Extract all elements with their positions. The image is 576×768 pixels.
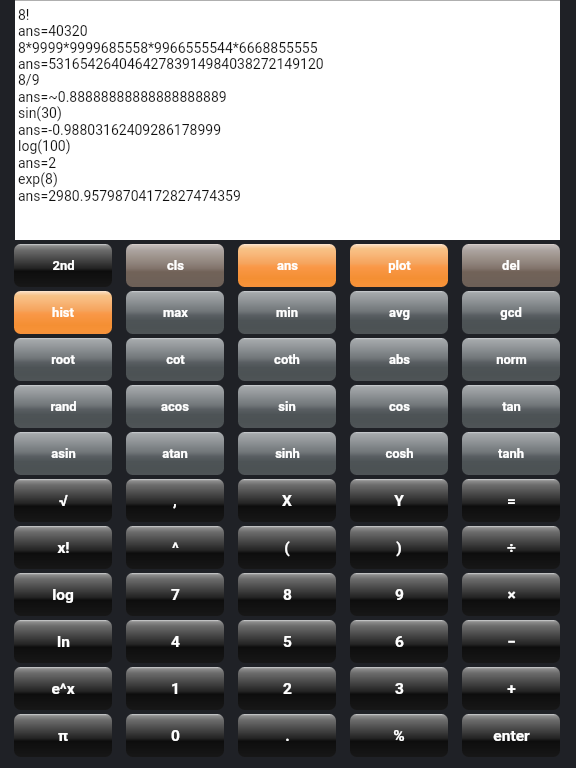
staticText: ans=53165426404642783914984038272149120 bbox=[18, 56, 324, 72]
staticText: norm bbox=[496, 352, 527, 367]
staticText: 1 bbox=[171, 680, 180, 698]
staticText: Y bbox=[394, 492, 404, 510]
button[interactable]: root bbox=[14, 338, 112, 381]
staticText: ^ bbox=[172, 539, 179, 557]
staticText: , bbox=[173, 492, 177, 510]
staticText: % bbox=[393, 727, 405, 745]
button[interactable]: abs bbox=[350, 338, 448, 381]
button[interactable]: 0 bbox=[126, 714, 224, 757]
button[interactable]: del bbox=[462, 244, 560, 287]
button[interactable]: tanh bbox=[462, 432, 560, 475]
staticText: atan bbox=[162, 446, 188, 461]
staticText: abs bbox=[389, 352, 410, 367]
button[interactable]: 1 bbox=[126, 667, 224, 710]
button[interactable]: hist bbox=[14, 291, 112, 334]
button[interactable]: norm bbox=[462, 338, 560, 381]
button[interactable]: acos bbox=[126, 385, 224, 428]
button[interactable]: cot bbox=[126, 338, 224, 381]
button[interactable]: 5 bbox=[238, 620, 336, 663]
button[interactable]: min bbox=[238, 291, 336, 334]
button[interactable]: tan bbox=[462, 385, 560, 428]
button[interactable]: = bbox=[462, 479, 560, 522]
button[interactable]: ^ bbox=[126, 526, 224, 569]
staticText: ans=~0.88888888888888888889 bbox=[18, 89, 227, 105]
staticText: log bbox=[52, 586, 74, 604]
button[interactable]: cosh bbox=[350, 432, 448, 475]
staticText: sinh bbox=[275, 446, 300, 461]
staticText: rand bbox=[50, 399, 77, 414]
staticText: X bbox=[282, 492, 292, 510]
button[interactable]: 9 bbox=[350, 573, 448, 616]
staticText: max bbox=[163, 305, 188, 320]
staticText: tanh bbox=[498, 446, 524, 461]
button[interactable]: 7 bbox=[126, 573, 224, 616]
button[interactable]: max bbox=[126, 291, 224, 334]
staticText: gcd bbox=[500, 305, 522, 320]
button[interactable]: gcd bbox=[462, 291, 560, 334]
staticText: 7 bbox=[171, 586, 180, 604]
staticText: 8 bbox=[283, 586, 292, 604]
button[interactable]: % bbox=[350, 714, 448, 757]
staticText: 8! bbox=[18, 7, 30, 23]
button[interactable]: 2nd bbox=[14, 244, 112, 287]
staticText: . bbox=[285, 727, 290, 745]
staticText: 6 bbox=[395, 633, 404, 651]
button[interactable]: plot bbox=[350, 244, 448, 287]
button[interactable]: e^x bbox=[14, 667, 112, 710]
button[interactable]: rand bbox=[14, 385, 112, 428]
button[interactable]: log bbox=[14, 573, 112, 616]
staticText: + bbox=[507, 680, 516, 698]
staticText: ans=-0.98803162409286178999 bbox=[18, 122, 222, 138]
button[interactable]: enter bbox=[462, 714, 560, 757]
button[interactable]: Y bbox=[350, 479, 448, 522]
button[interactable]: sin bbox=[238, 385, 336, 428]
staticText: ln bbox=[57, 633, 70, 651]
button[interactable]: 6 bbox=[350, 620, 448, 663]
staticText: root bbox=[51, 352, 75, 367]
staticText: √ bbox=[59, 492, 68, 510]
button[interactable]: X bbox=[238, 479, 336, 522]
button[interactable]: 4 bbox=[126, 620, 224, 663]
staticText: ans bbox=[277, 258, 298, 273]
button[interactable]: coth bbox=[238, 338, 336, 381]
staticText: coth bbox=[274, 352, 300, 367]
button[interactable]: 2 bbox=[238, 667, 336, 710]
button[interactable]: avg bbox=[350, 291, 448, 334]
button[interactable]: × bbox=[462, 573, 560, 616]
staticText: del bbox=[502, 258, 520, 273]
button[interactable]: + bbox=[462, 667, 560, 710]
button[interactable]: . bbox=[238, 714, 336, 757]
button[interactable]: ) bbox=[350, 526, 448, 569]
button[interactable]: sinh bbox=[238, 432, 336, 475]
button[interactable]: , bbox=[126, 479, 224, 522]
button[interactable]: atan bbox=[126, 432, 224, 475]
staticText: ÷ bbox=[507, 539, 516, 557]
staticText: min bbox=[276, 305, 298, 320]
button[interactable]: cls bbox=[126, 244, 224, 287]
button[interactable]: √ bbox=[14, 479, 112, 522]
staticText: 2nd bbox=[52, 258, 75, 273]
staticText: 5 bbox=[283, 633, 292, 651]
staticText: e^x bbox=[51, 680, 75, 698]
button[interactable]: − bbox=[462, 620, 560, 663]
staticText: sin bbox=[278, 399, 296, 414]
button[interactable]: cos bbox=[350, 385, 448, 428]
button[interactable]: ÷ bbox=[462, 526, 560, 569]
staticText: plot bbox=[388, 258, 411, 273]
button[interactable]: ( bbox=[238, 526, 336, 569]
staticText: cot bbox=[166, 352, 185, 367]
button[interactable]: 8 bbox=[238, 573, 336, 616]
button[interactable]: ans bbox=[238, 244, 336, 287]
staticText: 3 bbox=[395, 680, 404, 698]
staticText: x! bbox=[57, 539, 70, 557]
staticText: enter bbox=[493, 727, 530, 745]
button[interactable]: π bbox=[14, 714, 112, 757]
button[interactable]: 3 bbox=[350, 667, 448, 710]
staticText: π bbox=[58, 727, 68, 745]
staticText: 4 bbox=[171, 633, 180, 651]
button[interactable]: x! bbox=[14, 526, 112, 569]
staticText: 9 bbox=[395, 586, 404, 604]
button[interactable]: asin bbox=[14, 432, 112, 475]
staticText: 0 bbox=[171, 727, 180, 745]
button[interactable]: ln bbox=[14, 620, 112, 663]
